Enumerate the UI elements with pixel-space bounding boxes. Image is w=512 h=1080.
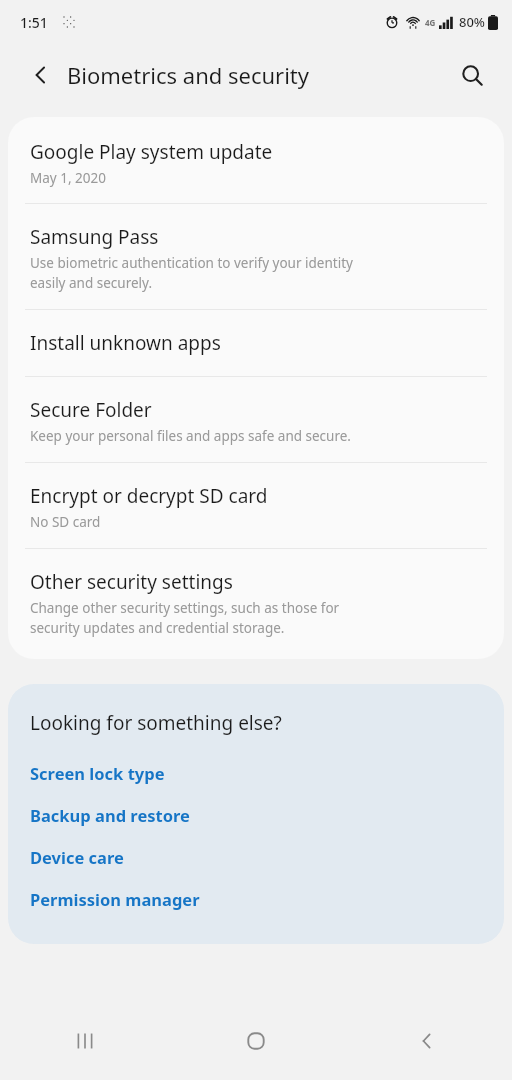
button[interactable]: Install unknown apps <box>8 310 504 376</box>
button[interactable]: Backup and restore <box>30 794 484 836</box>
staticText: Looking for something else? <box>30 710 282 736</box>
button[interactable]: Back <box>18 52 64 98</box>
button[interactable]: Samsung Pass <box>8 204 504 309</box>
staticText: Biometrics and security <box>67 60 310 90</box>
staticText: Use biometric authentication to verify y… <box>30 254 353 292</box>
staticText: Keep your personal files and apps safe a… <box>30 427 351 445</box>
button[interactable]: Permission manager <box>30 878 484 920</box>
button[interactable]: Google Play system update <box>8 117 504 203</box>
button[interactable]: Secure Folder <box>8 377 504 462</box>
staticText: Encrypt or decrypt SD card <box>30 483 268 509</box>
button[interactable]: Back <box>341 1002 512 1080</box>
button[interactable]: Device care <box>30 836 484 878</box>
staticText: Google Play system update <box>30 139 273 165</box>
staticText: Install unknown apps <box>30 330 221 356</box>
staticText: Samsung Pass <box>30 224 159 250</box>
staticText: Backup and restore <box>30 804 190 826</box>
staticText: 80% <box>459 13 485 31</box>
button[interactable]: Home <box>170 1002 341 1080</box>
staticText: 4G <box>425 17 436 28</box>
staticText: No SD card <box>30 513 101 531</box>
staticText: Permission manager <box>30 888 200 910</box>
button[interactable]: Encrypt or decrypt SD card <box>8 463 504 548</box>
button[interactable]: Other security settings <box>8 549 504 659</box>
staticText: Secure Folder <box>30 397 152 423</box>
button[interactable]: Recents <box>0 1002 170 1080</box>
staticText: Device care <box>30 846 124 868</box>
staticText: Other security settings <box>30 569 233 595</box>
button[interactable]: Screen lock type <box>30 752 484 794</box>
button[interactable]: Search <box>449 52 495 98</box>
staticText: Change other security settings, such as … <box>30 599 340 637</box>
staticText: 1:51 <box>20 13 48 32</box>
staticText: Screen lock type <box>30 762 165 784</box>
staticText: May 1, 2020 <box>30 169 106 187</box>
